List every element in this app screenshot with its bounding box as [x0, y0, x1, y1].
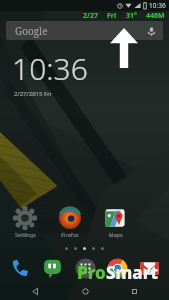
button[interactable]: Home [71, 282, 99, 300]
button[interactable]: Settings [8, 205, 42, 239]
button[interactable]: Phone [6, 254, 34, 282]
staticText: 10:36 [12, 48, 88, 89]
button[interactable]: Chrome [103, 254, 131, 282]
staticText: Settings [15, 231, 36, 238]
button[interactable]: Recents [120, 282, 148, 300]
button[interactable]: Maps [98, 205, 132, 239]
staticText: Smart [106, 261, 159, 284]
button[interactable]: Gmail [135, 254, 163, 282]
button[interactable]: Apps [71, 254, 99, 282]
staticText: 2/27/2015 Fri [14, 90, 52, 98]
button[interactable]: Google [6, 21, 163, 40]
button[interactable]: Voice search [145, 25, 157, 37]
staticText: Maps [108, 231, 123, 238]
button[interactable]: Back [21, 282, 49, 300]
staticText: 2/27 [83, 11, 98, 21]
staticText: Google [15, 24, 48, 38]
staticText: 31° [126, 11, 137, 21]
staticText: Pro [77, 261, 106, 284]
staticText: 10:36 [149, 1, 166, 10]
button[interactable]: Firefox [53, 205, 87, 239]
staticText: 446M [146, 11, 165, 21]
button[interactable]: Hangouts [38, 254, 66, 282]
staticText: Fri [107, 11, 117, 21]
staticText: Firefox [61, 231, 79, 238]
